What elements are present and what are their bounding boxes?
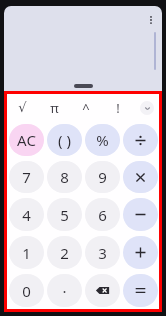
button[interactable]: Drag handle bbox=[74, 84, 93, 88]
staticText: % bbox=[96, 130, 109, 150]
staticText: √ bbox=[18, 100, 27, 115]
button[interactable]: 3 bbox=[85, 236, 120, 269]
button[interactable]: 5 bbox=[47, 198, 82, 231]
staticText: 8 bbox=[60, 167, 69, 187]
staticText: ! bbox=[116, 99, 120, 117]
button[interactable]: Expand functions bbox=[140, 101, 154, 115]
staticText: ( ) bbox=[58, 130, 71, 150]
staticText: 5 bbox=[60, 205, 69, 225]
staticText: 7 bbox=[22, 167, 31, 187]
button[interactable]: 7 bbox=[9, 161, 44, 193]
staticText: 6 bbox=[98, 205, 107, 225]
button[interactable]: Backspace bbox=[85, 274, 120, 307]
staticText: ^ bbox=[82, 99, 90, 117]
button[interactable]: 8 bbox=[47, 161, 82, 193]
button[interactable]: 0 bbox=[9, 274, 44, 307]
button[interactable]: ! bbox=[102, 94, 134, 121]
button[interactable]: √ bbox=[7, 94, 38, 121]
staticText: 9 bbox=[98, 167, 107, 187]
staticText: · bbox=[62, 281, 67, 301]
button[interactable]: 1 bbox=[9, 236, 44, 269]
button[interactable]: % bbox=[85, 124, 120, 156]
staticText: AC bbox=[17, 130, 36, 150]
button[interactable]: Plus bbox=[123, 236, 158, 269]
button[interactable]: π bbox=[38, 94, 70, 121]
button[interactable]: 2 bbox=[47, 236, 82, 269]
staticText: 2 bbox=[60, 243, 69, 263]
button[interactable]: 6 bbox=[85, 198, 120, 231]
button[interactable]: 9 bbox=[85, 161, 120, 193]
button[interactable]: AC bbox=[9, 124, 44, 156]
button[interactable]: ^ bbox=[70, 94, 102, 121]
button[interactable]: More options bbox=[143, 12, 159, 28]
button[interactable]: · bbox=[47, 274, 82, 307]
button[interactable]: Multiply bbox=[123, 161, 158, 193]
button[interactable]: Divide bbox=[123, 124, 158, 156]
staticText: 1 bbox=[22, 243, 31, 263]
staticText: 3 bbox=[98, 243, 107, 263]
button[interactable]: Minus bbox=[123, 198, 158, 231]
staticText: 4 bbox=[22, 205, 31, 225]
button[interactable]: Equals bbox=[123, 274, 158, 307]
staticText: 0 bbox=[22, 281, 31, 301]
button[interactable]: 4 bbox=[9, 198, 44, 231]
staticText: π bbox=[50, 99, 59, 117]
button[interactable]: ( ) bbox=[47, 124, 82, 156]
